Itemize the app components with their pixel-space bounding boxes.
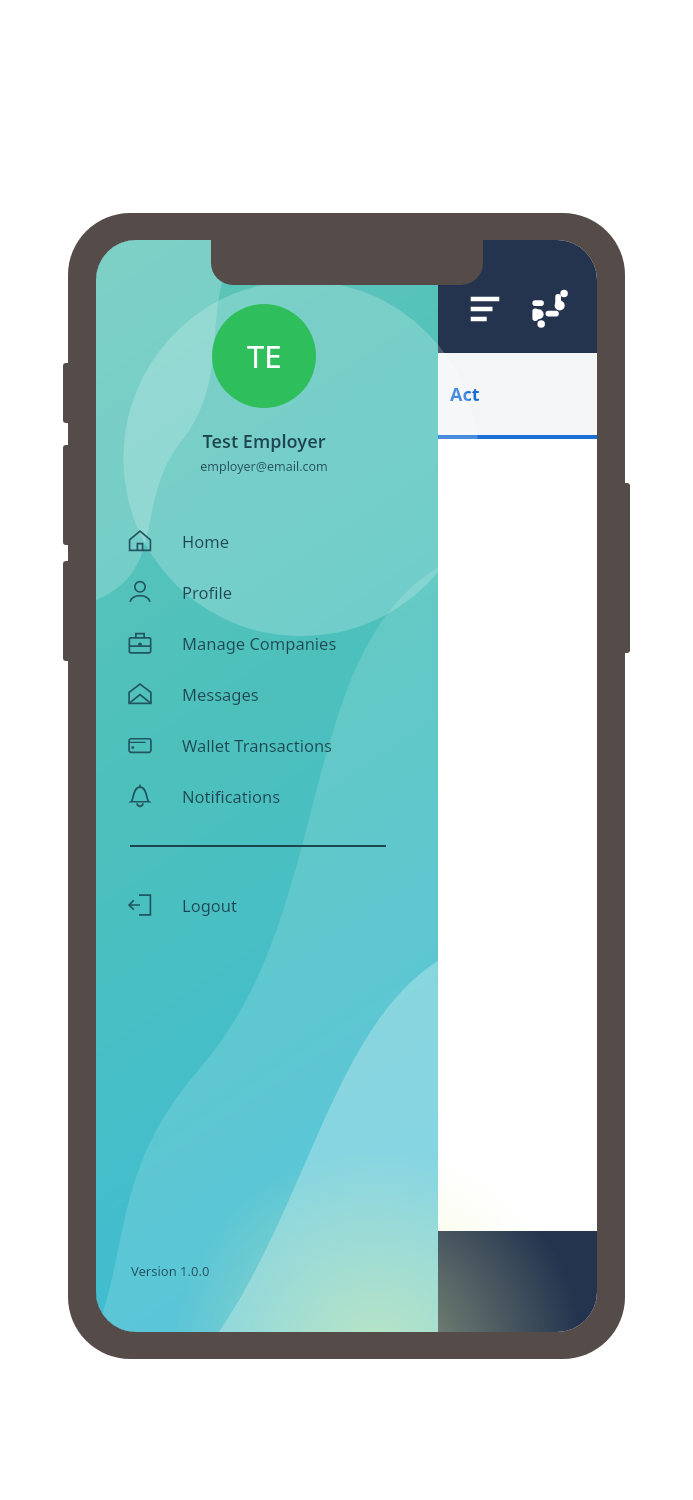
button[interactable]: Manage Companies: [96, 617, 438, 668]
button[interactable]: TE: [212, 304, 316, 408]
staticText: Logout: [182, 894, 237, 916]
staticText: Home: [182, 530, 229, 552]
staticText: Notifications: [182, 785, 281, 807]
button[interactable]: Profile: [96, 566, 438, 617]
button[interactable]: Logout: [96, 879, 438, 930]
staticText: Wallet Transactions: [182, 734, 333, 756]
button[interactable]: Home: [96, 515, 438, 566]
button[interactable]: Messages: [96, 668, 438, 719]
button[interactable]: Wallet Transactions: [96, 719, 438, 770]
staticText: TE: [247, 335, 282, 377]
staticText: Manage Companies: [182, 632, 337, 654]
button[interactable]: Logo: [528, 287, 572, 331]
staticText: Version 1.0.0: [131, 1262, 210, 1280]
button[interactable]: Notifications: [96, 770, 438, 821]
button[interactable]: Menu: [468, 292, 502, 326]
staticText: Messages: [182, 683, 259, 705]
staticText: Test Employer: [202, 429, 326, 454]
staticText: employer@email.com: [200, 458, 328, 475]
staticText: Act: [450, 382, 480, 407]
staticText: Profile: [182, 581, 232, 603]
